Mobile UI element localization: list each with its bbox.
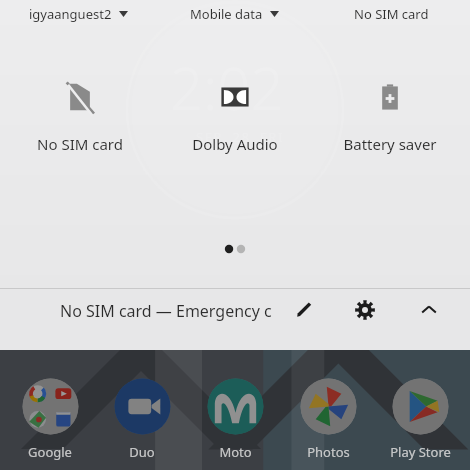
button[interactable]: Collapse [415,296,443,324]
button[interactable]: igyaanguest2 [0,0,156,28]
button[interactable]: Play Store [377,378,463,461]
staticText: SEP 28 FRI [196,128,284,146]
staticText: Photos [307,443,350,461]
button[interactable]: Dolby Audio [160,80,310,154]
staticText: No SIM card [37,134,123,154]
button[interactable]: Settings [351,296,379,324]
button[interactable]: Google [7,378,93,461]
button[interactable]: No SIM card — Emergency c [60,300,272,322]
button[interactable]: No SIM card [313,0,470,28]
button[interactable]: Duo [99,378,185,461]
staticText: Play Store [390,443,451,461]
staticText: No SIM card — Emergency c [60,300,272,322]
button[interactable]: No SIM card [5,80,155,154]
button[interactable]: Battery saver [315,80,465,154]
button[interactable]: Photos [285,378,371,461]
staticText: Battery saver [343,134,437,154]
staticText: Dolby Audio [192,134,278,154]
staticText: Google [28,443,72,461]
staticText: igyaanguest2 [29,5,112,23]
button[interactable]: Edit [290,296,318,324]
staticText: Duo [129,443,155,461]
button[interactable]: Moto [192,378,278,461]
staticText: 2:02 [170,48,284,127]
staticText: Mobile data [190,5,263,23]
staticText: No SIM card [354,5,429,23]
button[interactable]: Mobile data [156,0,313,28]
staticText: Moto [219,443,252,461]
